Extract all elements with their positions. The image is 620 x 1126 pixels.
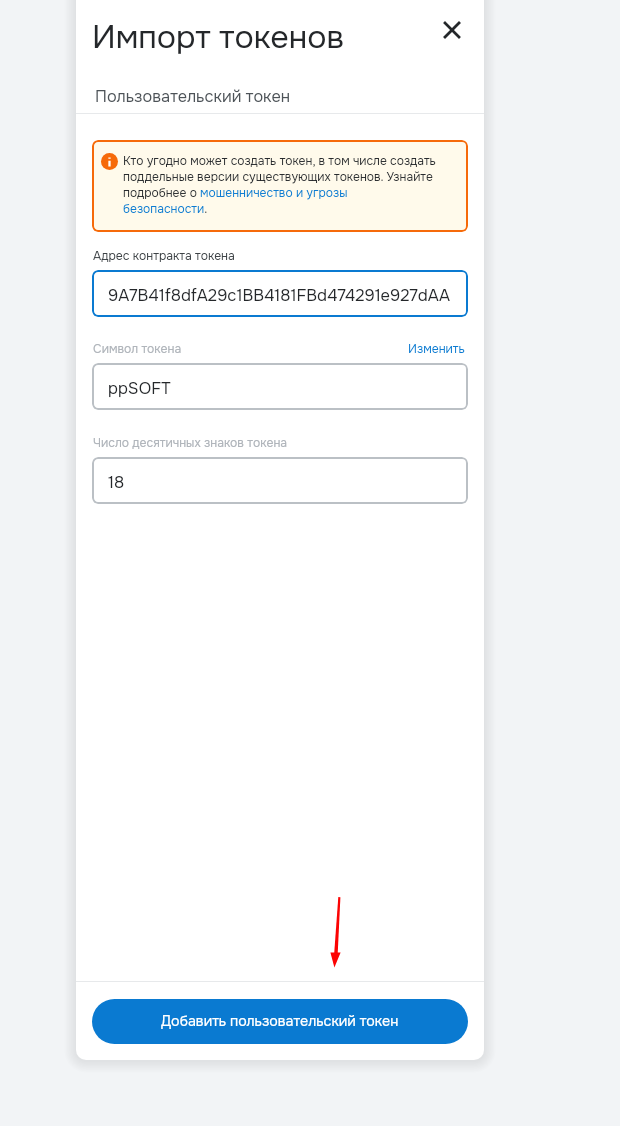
staticText: Адрес контракта токена bbox=[93, 248, 235, 264]
staticText: Добавить пользовательский токен bbox=[161, 1012, 399, 1030]
button[interactable]: Close bbox=[438, 16, 466, 44]
staticText: Символ токена bbox=[93, 341, 182, 357]
button[interactable]: Изменить bbox=[411, 341, 468, 357]
staticText: Число десятичных знаков токена bbox=[93, 435, 288, 451]
button[interactable]: ppSOFT bbox=[92, 363, 468, 410]
staticText: Пользовательский токен bbox=[95, 86, 291, 107]
staticText: Импорт токенов bbox=[92, 17, 345, 58]
button[interactable]: 9A7B41f8dfA29c1BB4181FBd474291e927dAA bbox=[92, 270, 468, 317]
button[interactable]: 18 bbox=[92, 457, 468, 504]
button[interactable]: Пользовательский токен bbox=[76, 78, 312, 113]
staticText: ppSOFT bbox=[108, 378, 171, 399]
button[interactable]: Добавить пользовательский токен bbox=[92, 999, 468, 1044]
staticText: Кто угодно может создать токен, в том чи… bbox=[123, 153, 441, 217]
staticText: 9A7B41f8dfA29c1BB4181FBd474291e927dAA bbox=[108, 285, 451, 306]
staticText: 18 bbox=[108, 472, 125, 493]
